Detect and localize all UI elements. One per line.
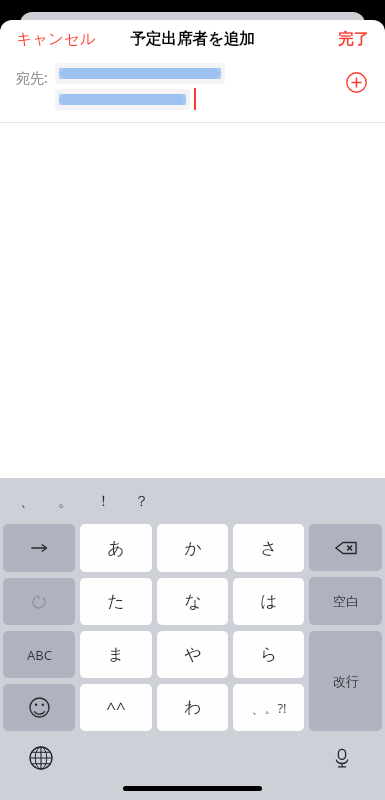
button[interactable]: ABC: [3, 631, 75, 678]
staticText: 予定出席者を追加: [130, 29, 255, 49]
other: 削除: [334, 536, 358, 560]
staticText: ら: [260, 644, 278, 665]
staticText: 空白: [333, 593, 359, 609]
button[interactable]: 言語を切り替え: [22, 739, 60, 777]
staticText: た: [107, 591, 125, 612]
button[interactable]: あ: [80, 524, 152, 572]
button[interactable]: や: [157, 631, 228, 678]
button[interactable]: は: [233, 578, 304, 625]
button[interactable]: 、。?!: [233, 684, 304, 731]
staticText: ？: [134, 492, 149, 511]
staticText: 改行: [333, 673, 359, 689]
staticText: か: [184, 538, 202, 559]
button[interactable]: 削除: [309, 524, 382, 571]
other: 絵文字: [29, 697, 50, 718]
button[interactable]: 連絡先を追加: [340, 66, 372, 98]
button[interactable]: 、: [8, 478, 46, 524]
staticText: ^^: [106, 696, 126, 719]
button[interactable]: 絵文字: [3, 684, 75, 731]
button[interactable]: 完了: [322, 23, 385, 55]
staticText: 、: [20, 492, 35, 511]
staticText: 完了: [338, 29, 369, 49]
staticText: 宛先:: [16, 68, 48, 87]
button[interactable]: ら: [233, 631, 304, 678]
button[interactable]: か: [157, 524, 228, 572]
button[interactable]: 改行: [309, 631, 382, 731]
staticText: ！: [96, 492, 111, 511]
button[interactable]: 取り消し: [3, 578, 75, 625]
staticText: あ: [107, 538, 125, 559]
button[interactable]: ！: [84, 478, 122, 524]
staticText: ま: [107, 644, 125, 665]
other: 取り消し: [29, 592, 49, 612]
button[interactable]: な: [157, 578, 228, 625]
staticText: な: [184, 591, 202, 612]
button[interactable]: 次候補: [3, 524, 75, 572]
staticText: キャンセル: [16, 29, 96, 49]
button[interactable]: ^^: [80, 684, 152, 731]
button[interactable]: 宛先:: [0, 58, 385, 122]
staticText: さ: [260, 538, 278, 559]
button[interactable]: ま: [80, 631, 152, 678]
other: 次候補: [28, 537, 50, 559]
button[interactable]: ？: [122, 478, 160, 524]
button[interactable]: さ: [233, 524, 304, 572]
button[interactable]: 。: [46, 478, 84, 524]
button[interactable]: キャンセル: [0, 23, 112, 55]
staticText: わ: [184, 697, 202, 718]
staticText: 、。?!: [251, 699, 287, 717]
staticText: は: [260, 591, 278, 612]
button[interactable]: わ: [157, 684, 228, 731]
button[interactable]: 空白: [309, 577, 382, 625]
staticText: ABC: [27, 646, 52, 664]
button[interactable]: 音声入力: [323, 739, 361, 777]
staticText: 。: [58, 492, 73, 511]
staticText: や: [184, 644, 202, 665]
button[interactable]: た: [80, 578, 152, 625]
